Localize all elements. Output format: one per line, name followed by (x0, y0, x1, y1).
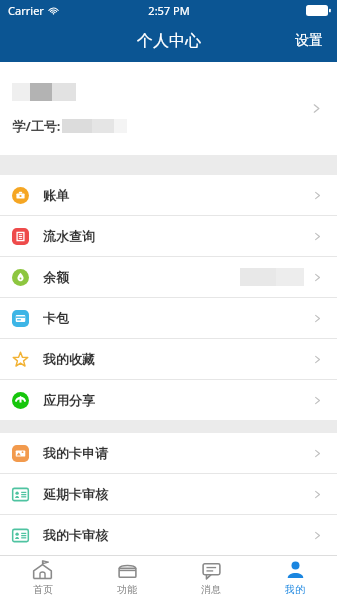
staticText: 设置 (295, 32, 323, 50)
staticText: 应用分享 (43, 392, 95, 408)
button[interactable]: 流水查询 (0, 216, 337, 256)
staticText: 我的卡审核 (43, 527, 108, 543)
staticText: 余额 (43, 269, 69, 285)
staticText: Carrier (8, 3, 44, 18)
staticText: 账单 (43, 187, 69, 203)
staticText: 首页 (33, 583, 53, 596)
staticText: 延期卡审核 (43, 486, 108, 502)
staticText: 我的收藏 (43, 351, 95, 367)
button[interactable]: 我的卡申请 (0, 433, 337, 473)
staticText: 2:57 PM (148, 3, 190, 18)
button[interactable]: 卡包 (0, 298, 337, 338)
button[interactable]: 应用分享 (0, 380, 337, 420)
button[interactable]: 我的卡审核 (0, 515, 337, 555)
staticText: 个人中心 (137, 31, 201, 51)
button[interactable]: 首页 (0, 556, 85, 600)
button[interactable]: 消息 (169, 556, 253, 600)
button[interactable]: 账单 (0, 175, 337, 215)
button[interactable]: 设置 (281, 24, 337, 58)
staticText: 我的卡申请 (43, 445, 108, 461)
staticText: 消息 (201, 583, 221, 596)
button[interactable]: 延期卡审核 (0, 474, 337, 514)
staticText: 学/工号: (12, 117, 61, 135)
button[interactable]: 我的收藏 (0, 339, 337, 379)
button[interactable]: 我的 (253, 556, 337, 600)
button[interactable]: 功能 (85, 556, 169, 600)
staticText: 流水查询 (43, 228, 95, 244)
button[interactable]: 余额 (0, 257, 337, 297)
button[interactable]: 学/工号: (0, 62, 337, 155)
staticText: 卡包 (43, 310, 69, 326)
staticText: 功能 (117, 583, 137, 596)
staticText: 我的 (285, 583, 305, 596)
